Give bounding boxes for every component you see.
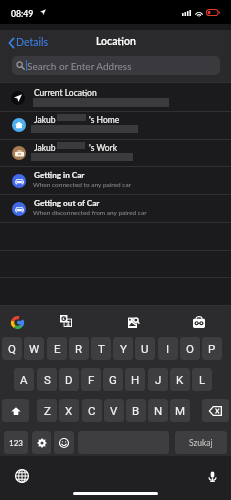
staticText: S	[44, 373, 51, 386]
button[interactable]: Emoji	[54, 431, 74, 454]
staticText: I	[166, 342, 170, 355]
button[interactable]: Getting out of Car	[0, 195, 231, 223]
staticText: Jakub	[34, 143, 56, 153]
staticText: Location	[96, 35, 136, 48]
staticText: B	[132, 404, 140, 417]
staticText: A	[20, 373, 28, 386]
button[interactable]: M	[170, 399, 190, 422]
staticText: Getting in Car	[34, 170, 85, 180]
button[interactable]: Q	[2, 337, 22, 360]
staticText: V	[110, 404, 118, 417]
staticText: W	[29, 342, 40, 355]
button[interactable]: Szukaj	[175, 431, 227, 454]
staticText: Getting out of Car	[34, 198, 100, 208]
button[interactable]: Backspace	[202, 399, 229, 422]
staticText: G	[109, 373, 117, 386]
button[interactable]: Shift	[2, 399, 29, 422]
button[interactable]: Search image	[125, 314, 141, 330]
button[interactable]: P	[202, 337, 222, 360]
staticText: H	[131, 373, 140, 386]
button[interactable]: T	[91, 337, 111, 360]
button[interactable]: Voice input	[205, 469, 219, 483]
staticText: When connected to any paired car	[33, 181, 132, 189]
button[interactable]: Settings	[32, 431, 51, 454]
staticText: L	[199, 373, 206, 386]
button[interactable]: D	[59, 368, 79, 391]
staticText: U	[141, 342, 149, 355]
button[interactable]: E	[47, 337, 67, 360]
button[interactable]: B	[126, 399, 146, 422]
button[interactable]: Stickers	[191, 314, 207, 330]
button[interactable]: Translate	[58, 313, 74, 329]
button[interactable]: I	[158, 337, 178, 360]
button[interactable]: L	[192, 368, 212, 391]
button[interactable]: Jakub	[0, 111, 231, 139]
button[interactable]: J	[148, 368, 168, 391]
button[interactable]: Getting in Car	[0, 167, 231, 195]
staticText: 123	[9, 438, 23, 448]
button[interactable]: Change keyboard language	[15, 469, 29, 483]
staticText: Szukaj	[189, 438, 213, 448]
button[interactable]: U	[135, 337, 155, 360]
staticText: X	[65, 404, 73, 417]
button[interactable]: V	[104, 399, 124, 422]
button[interactable]: S	[37, 368, 57, 391]
button[interactable]: C	[82, 399, 102, 422]
button[interactable]: Google Search	[9, 314, 25, 330]
staticText: T	[98, 342, 105, 355]
button[interactable]: G	[103, 368, 123, 391]
staticText: 's Work	[89, 143, 117, 153]
button[interactable]: N	[148, 399, 168, 422]
staticText: Details	[16, 36, 48, 49]
staticText: Y	[120, 342, 127, 355]
staticText: J	[155, 373, 162, 386]
button[interactable]: O	[180, 337, 200, 360]
staticText: C	[88, 404, 96, 417]
button[interactable]: Z	[37, 399, 57, 422]
button[interactable]: Y	[113, 337, 133, 360]
button[interactable]: 123	[4, 431, 28, 454]
staticText: E	[54, 342, 61, 355]
staticText: 08:49	[11, 8, 34, 18]
staticText: Jakub	[34, 115, 56, 125]
button[interactable]: K	[170, 368, 190, 391]
staticText: Q	[8, 342, 16, 355]
staticText: F	[88, 373, 95, 386]
button[interactable]: A	[14, 368, 34, 391]
button[interactable]: H	[125, 368, 145, 391]
staticText: N	[154, 404, 163, 417]
staticText: M	[175, 404, 186, 417]
staticText: K	[176, 373, 184, 386]
staticText: P	[208, 342, 216, 355]
staticText: D	[65, 373, 73, 386]
staticText: Search or Enter Address	[27, 60, 132, 72]
button[interactable]: Current Location	[0, 83, 231, 111]
staticText: R	[75, 342, 83, 355]
button[interactable]: Details	[7, 34, 50, 51]
staticText: 's Home	[89, 115, 120, 125]
staticText: O	[186, 342, 194, 355]
button[interactable]: W	[24, 337, 44, 360]
button[interactable]: F	[81, 368, 101, 391]
staticText: Current Location	[34, 88, 97, 98]
staticText: Z	[44, 404, 51, 417]
button[interactable]: X	[59, 399, 79, 422]
staticText: When disconnected from any paired car	[33, 209, 147, 217]
button[interactable]: Jakub	[0, 139, 231, 167]
button[interactable]: Search or Enter Address	[12, 56, 220, 75]
button[interactable]: R	[69, 337, 89, 360]
